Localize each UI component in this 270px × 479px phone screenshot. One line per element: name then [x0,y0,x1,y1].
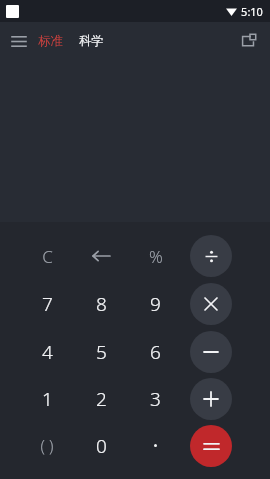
button[interactable]: Menu [4,26,34,56]
button[interactable]: × [190,283,232,325]
staticText: 8 [96,291,107,317]
button[interactable]: 2 [74,375,128,422]
button[interactable]: = [190,425,232,467]
button[interactable]: ÷ [190,235,232,277]
staticText: 2 [96,386,107,412]
button[interactable]: ( ) [20,422,74,469]
staticText: 7 [42,291,53,317]
button[interactable]: 8 [74,280,128,328]
button[interactable]: − [190,331,232,373]
button[interactable]: 6 [128,328,183,375]
button[interactable]: 科学 [75,29,108,53]
button[interactable]: 1 [20,375,74,422]
button[interactable]: % [128,232,183,280]
button[interactable]: + [190,378,232,420]
staticText: 1 [42,386,53,412]
button[interactable]: 9 [128,280,183,328]
staticText: ( ) [40,435,54,457]
staticText: 9 [150,291,161,317]
button[interactable]: 3 [128,375,183,422]
button[interactable]: History [234,26,264,56]
staticText: 6 [150,339,161,365]
staticText: 4 [42,339,53,365]
staticText: 3 [150,386,161,412]
staticText: 标准 [38,33,63,49]
button[interactable]: 0 [74,422,128,469]
staticText: 5 [96,339,107,365]
staticText: % [149,245,163,268]
button[interactable]: Backspace [74,232,128,280]
button[interactable]: 7 [20,280,74,328]
button[interactable]: 标准 [34,29,67,53]
staticText: 科学 [79,33,104,49]
button[interactable]: C [20,232,74,280]
button[interactable]: Decimal point [128,422,183,469]
staticText: C [42,245,53,268]
button[interactable]: 5 [74,328,128,375]
button[interactable]: 4 [20,328,74,375]
staticText: 5:10 [241,4,263,19]
staticText: 0 [96,433,107,459]
